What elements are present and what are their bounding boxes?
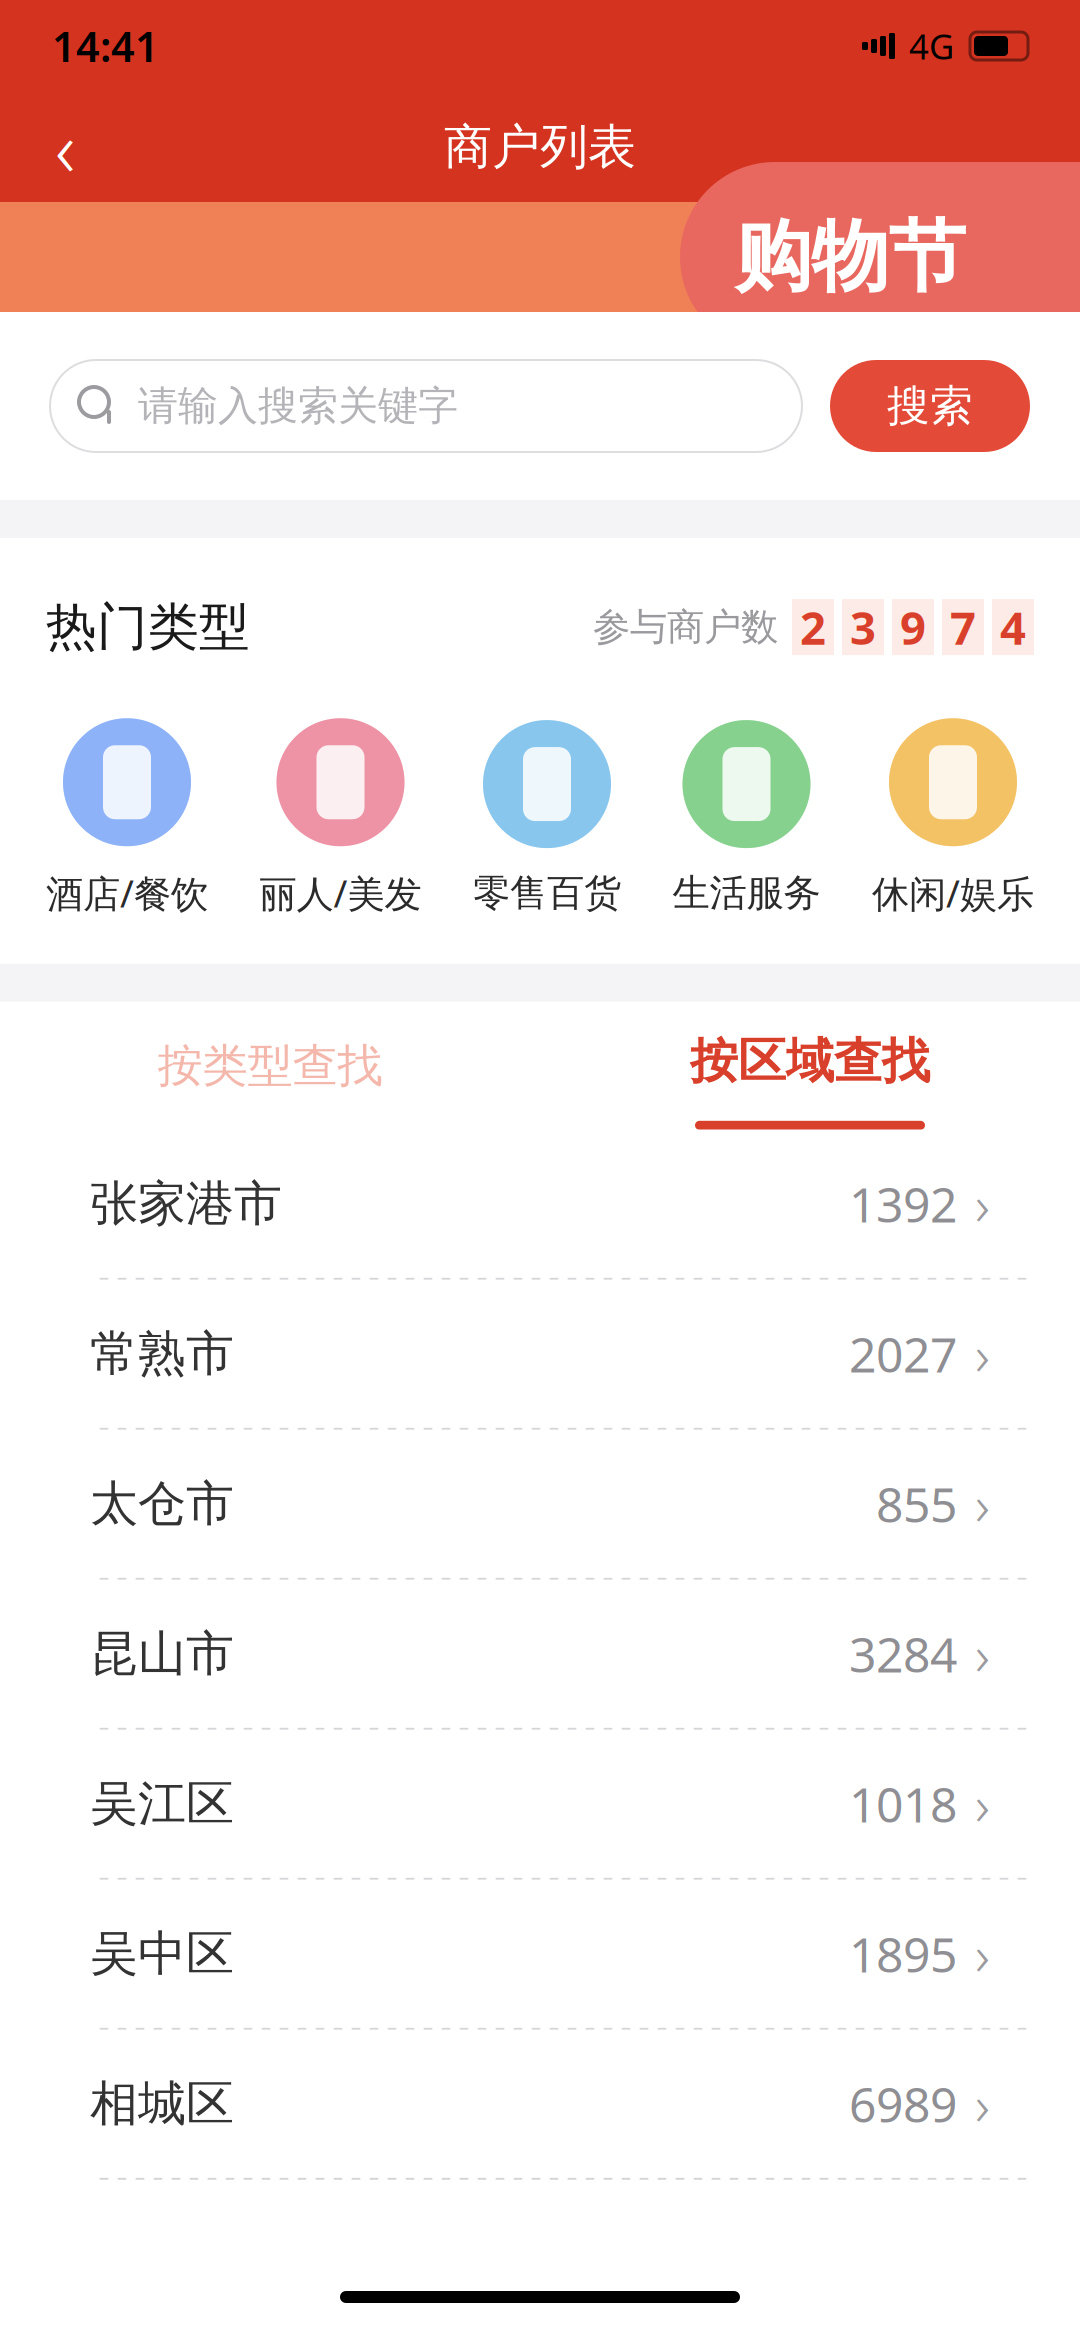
button[interactable]: 请输入搜索关键字	[50, 360, 802, 452]
staticText: 3	[850, 597, 876, 657]
button[interactable]: 搜索	[830, 360, 1030, 452]
button[interactable]: 常熟市	[0, 1280, 1080, 1428]
staticText: 9	[900, 597, 926, 657]
button[interactable]: 昆山市	[0, 1580, 1080, 1728]
button[interactable]: 丽人/美发	[259, 718, 421, 918]
staticText: ‹	[55, 96, 75, 198]
button[interactable]: 按区域查找	[540, 1002, 1080, 1130]
button[interactable]: 吴中区	[0, 1880, 1080, 2028]
staticText: 酒店/餐饮	[46, 868, 208, 918]
button[interactable]: 零售百货	[473, 720, 621, 916]
button[interactable]: 休闲/娱乐	[872, 718, 1034, 918]
staticText: 昆山市	[90, 1624, 234, 1683]
staticText: 商户列表	[444, 117, 636, 176]
staticText: 搜索	[887, 380, 973, 432]
staticText: ›	[975, 1167, 990, 1241]
staticText: 7	[950, 597, 976, 657]
button[interactable]: 张家港市	[0, 1130, 1080, 1278]
staticText: 零售百货	[473, 870, 621, 916]
button[interactable]: 吴江区	[0, 1730, 1080, 1878]
staticText: 太仓市	[90, 1474, 234, 1533]
staticText: ›	[975, 1917, 990, 1991]
staticText: 4G	[909, 23, 954, 69]
staticText: 吴江区	[90, 1774, 234, 1833]
button[interactable]: 按类型查找	[0, 1002, 540, 1130]
staticText: 常熟市	[90, 1324, 234, 1383]
button[interactable]: Back	[20, 102, 110, 192]
staticText: 请输入搜索关键字	[138, 381, 458, 430]
button[interactable]: 太仓市	[0, 1430, 1080, 1578]
staticText: ›	[975, 1467, 990, 1541]
button[interactable]: 酒店/餐饮	[46, 718, 208, 918]
staticText: 855	[876, 1472, 957, 1536]
staticText: 1392	[849, 1172, 957, 1236]
staticText: 2	[800, 597, 826, 657]
staticText: ›	[975, 1767, 990, 1841]
staticText: 相城区	[90, 2074, 234, 2133]
staticText: 丽人/美发	[259, 868, 421, 918]
staticText: 4	[1000, 597, 1026, 657]
staticText: 参与商户数	[593, 604, 778, 650]
staticText: 6989	[849, 2072, 957, 2136]
staticText: ›	[975, 1317, 990, 1391]
button[interactable]: 生活服务	[672, 720, 820, 916]
staticText: ›	[975, 1617, 990, 1691]
staticText: 按类型查找	[157, 1038, 382, 1094]
staticText: 1018	[849, 1772, 957, 1836]
staticText: 1895	[849, 1922, 957, 1986]
staticText: 2027	[849, 1322, 957, 1386]
staticText: 休闲/娱乐	[872, 868, 1034, 918]
button[interactable]: 相城区	[0, 2030, 1080, 2178]
staticText: 3284	[849, 1622, 957, 1686]
staticText: 热门类型	[46, 596, 250, 658]
staticText: ›	[975, 2067, 990, 2141]
staticText: 按区域查找	[690, 1032, 930, 1091]
staticText: 14:41	[52, 19, 159, 73]
staticText: 吴中区	[90, 1924, 234, 1983]
staticText: 生活服务	[672, 870, 820, 916]
staticText: 购物节	[734, 209, 965, 304]
staticText: 张家港市	[90, 1174, 282, 1233]
